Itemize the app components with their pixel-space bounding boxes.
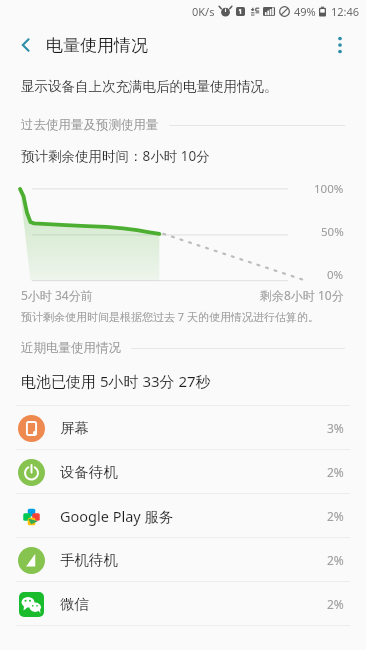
button[interactable]: Back — [6, 25, 46, 65]
staticText: 5小时 34分前 — [21, 287, 93, 303]
staticText: 2% — [327, 552, 344, 568]
staticText: 0% — [327, 267, 344, 283]
staticText: 设备待机 — [60, 463, 118, 481]
staticText: 屏幕 — [60, 419, 89, 437]
button[interactable]: 屏幕 — [0, 406, 366, 449]
staticText: 3% — [327, 420, 344, 436]
staticText: 2% — [327, 596, 344, 612]
button[interactable]: More options — [320, 25, 360, 65]
staticText: 手机待机 — [60, 551, 118, 569]
staticText: 2% — [327, 464, 344, 480]
staticText: 预计剩余使用时间是根据您过去 7 天的使用情况进行估算的。 — [21, 309, 320, 324]
staticText: 近期电量使用情况 — [21, 340, 121, 356]
staticText: 电量使用情况 — [46, 35, 148, 56]
staticText: 49% — [294, 4, 316, 19]
staticText: 电池已使用 5小时 33分 27秒 — [21, 371, 211, 391]
staticText: 0K/s — [192, 4, 215, 19]
staticText: 12:46 — [331, 4, 360, 19]
staticText: Google Play 服务 — [60, 506, 174, 526]
staticText: 预计剩余使用时间：8小时 10分 — [21, 147, 210, 165]
staticText: 100% — [314, 181, 344, 197]
button[interactable]: 手机待机 — [0, 538, 366, 581]
staticText: 剩余8小时 10分 — [260, 287, 344, 303]
button[interactable]: 设备待机 — [0, 450, 366, 493]
staticText: 过去使用量及预测使用量 — [21, 117, 159, 133]
button[interactable]: Google Play 服务 — [0, 494, 366, 537]
staticText: 2% — [327, 508, 344, 524]
staticText: 微信 — [60, 595, 89, 613]
button[interactable]: 微信 — [0, 582, 366, 625]
staticText: 50% — [321, 224, 344, 240]
staticText: 显示设备自上次充满电后的电量使用情况。 — [21, 78, 278, 95]
